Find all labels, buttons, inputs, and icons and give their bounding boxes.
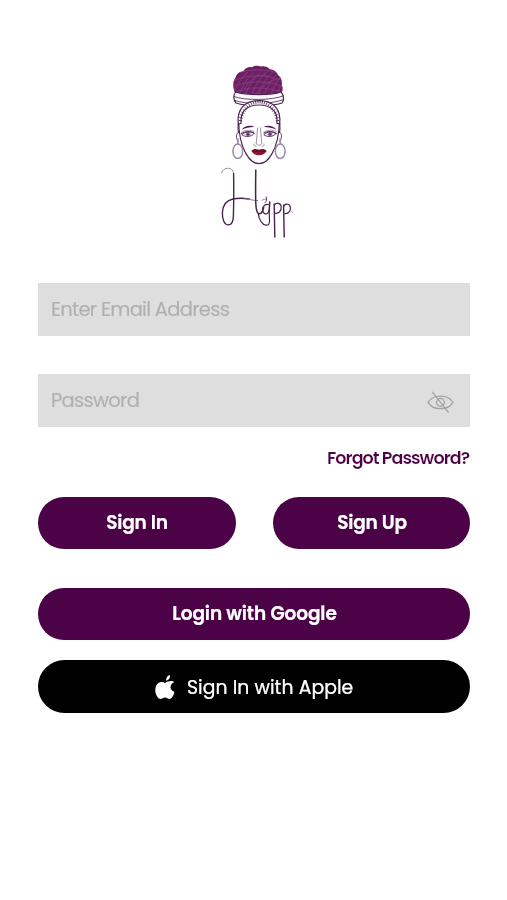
- button[interactable]: Sign Up: [273, 497, 470, 549]
- staticText: Enter Email Address: [51, 296, 230, 323]
- staticText: Forgot Password?: [327, 446, 470, 471]
- button[interactable]: Password: [38, 374, 470, 427]
- button[interactable]: Enter Email Address: [38, 283, 470, 336]
- button[interactable]: Show password: [423, 384, 457, 418]
- staticText: Password: [51, 387, 140, 414]
- staticText: Sign In: [106, 510, 168, 536]
- button[interactable]: Login with Google: [38, 588, 470, 640]
- button[interactable]: Sign In with Apple: [38, 660, 470, 713]
- button[interactable]: Sign In: [38, 497, 236, 549]
- staticText: Sign In with Apple: [187, 674, 354, 700]
- staticText: Login with Google: [172, 601, 337, 627]
- button[interactable]: Forgot Password?: [312, 445, 470, 472]
- staticText: Sign Up: [337, 510, 407, 536]
